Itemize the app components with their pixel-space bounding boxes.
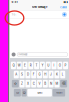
staticText: 9:41: [11, 0, 17, 4]
button[interactable]: G: [37, 71, 42, 78]
staticText: Q: [12, 64, 14, 67]
button[interactable]: T: [34, 62, 39, 69]
staticText: To:: [12, 13, 17, 16]
button[interactable]: Cancel: [60, 6, 67, 9]
staticText: O: [59, 64, 61, 67]
button[interactable]: L: [60, 71, 65, 78]
staticText: iMessage: [18, 53, 27, 56]
staticText: N: [50, 82, 52, 85]
staticText: K: [56, 73, 58, 76]
staticText: S: [21, 73, 23, 76]
staticText: Z: [21, 82, 23, 85]
staticText: ☺: [23, 91, 26, 94]
button[interactable]: Add contact: [61, 11, 67, 17]
staticText: D: [27, 73, 29, 76]
button[interactable]: return: [53, 89, 65, 97]
button[interactable]: Z: [20, 80, 25, 87]
staticText: G: [38, 73, 40, 76]
staticText: ▮▮ ▮: [63, 1, 67, 3]
button[interactable]: D: [25, 71, 30, 78]
staticText: F: [33, 73, 35, 76]
button[interactable]: F: [31, 71, 36, 78]
button[interactable]: K: [54, 71, 59, 78]
staticText: T: [36, 64, 38, 67]
button[interactable]: X: [25, 80, 30, 87]
button[interactable]: space: [27, 89, 52, 97]
button[interactable]: ⇧: [12, 80, 19, 87]
staticText: U: [47, 64, 49, 67]
staticText: Y: [41, 64, 43, 67]
button[interactable]: W: [17, 62, 22, 69]
button[interactable]: I: [51, 62, 56, 69]
button[interactable]: N: [49, 80, 54, 87]
button[interactable]: M: [54, 80, 59, 87]
button[interactable]: ⌫: [60, 80, 67, 87]
button[interactable]: B: [43, 80, 48, 87]
button[interactable]: Camera: [11, 52, 16, 57]
staticText: New Message: [32, 6, 47, 9]
staticText: R: [30, 64, 32, 67]
button[interactable]: C: [31, 80, 36, 87]
button[interactable]: J: [49, 71, 54, 78]
button[interactable]: Y: [40, 62, 45, 69]
button[interactable]: H: [43, 71, 48, 78]
staticText: return: [56, 91, 62, 94]
button[interactable]: E: [22, 62, 27, 69]
staticText: J: [50, 73, 52, 76]
button[interactable]: V: [37, 80, 42, 87]
button[interactable]: A: [14, 71, 19, 78]
staticText: Cancel: [60, 6, 67, 9]
staticText: C: [33, 82, 35, 85]
button[interactable]: U: [46, 62, 51, 69]
staticText: ⌫: [62, 82, 66, 86]
staticText: A: [15, 73, 17, 76]
button[interactable]: Q: [11, 62, 16, 69]
staticText: M: [55, 82, 58, 85]
button[interactable]: S: [20, 71, 25, 78]
staticText: H: [44, 73, 46, 76]
button[interactable]: R: [28, 62, 33, 69]
staticText: L: [62, 73, 64, 76]
staticText: ⇧: [14, 82, 17, 86]
button[interactable]: ☺: [22, 89, 27, 97]
button[interactable]: O: [57, 62, 62, 69]
staticText: B: [44, 82, 46, 85]
staticText: P: [65, 64, 67, 67]
staticText: X: [27, 82, 29, 85]
button[interactable]: 123: [14, 89, 21, 97]
button[interactable]: P: [63, 62, 68, 69]
staticText: space: [37, 91, 42, 94]
staticText: E: [24, 64, 26, 67]
staticText: W: [18, 64, 21, 67]
staticText: 123: [16, 91, 19, 94]
staticText: V: [38, 82, 40, 85]
